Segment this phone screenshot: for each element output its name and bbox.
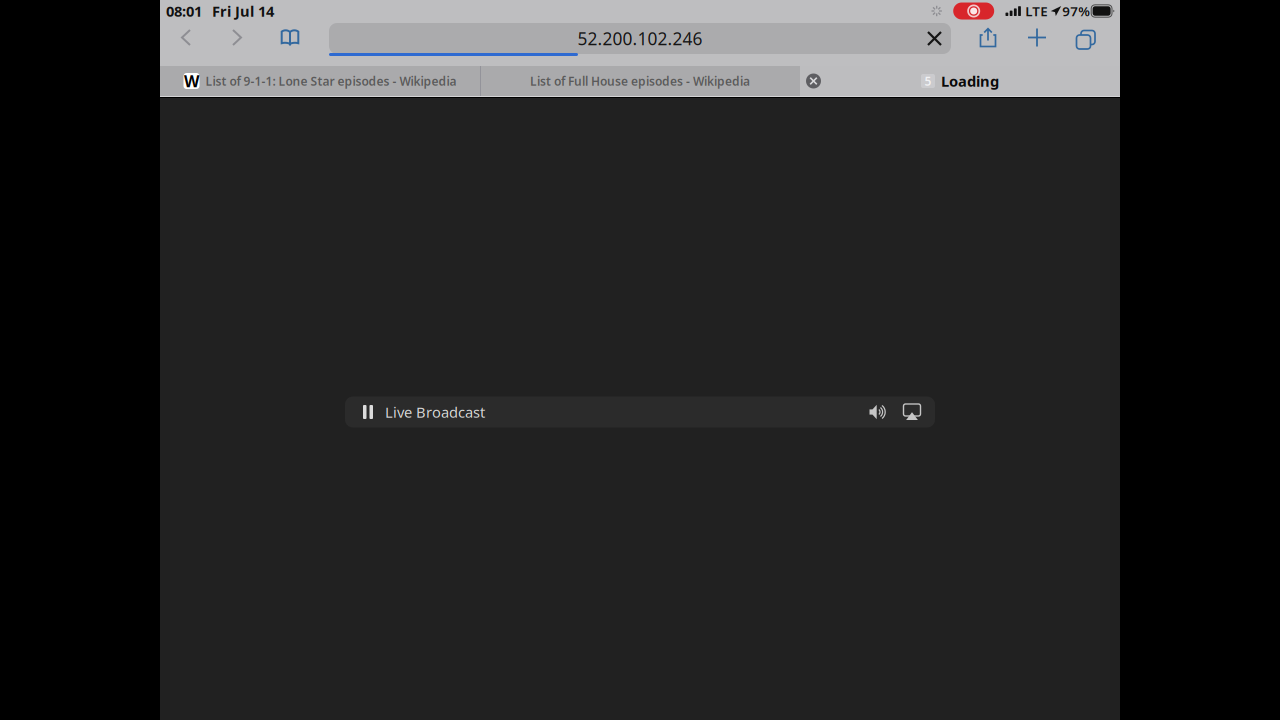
button[interactable]: Forward — [212, 22, 262, 53]
button[interactable]: AirPlay — [895, 397, 929, 427]
staticText: List of Full House episodes - Wikipedia — [530, 73, 750, 89]
staticText: Loading — [941, 71, 999, 91]
button[interactable]: Pause — [351, 397, 385, 427]
staticText: List of 9-1-1: Lone Star episodes - Wiki… — [205, 73, 456, 89]
staticText: 52.200.102.246 — [577, 27, 702, 50]
button[interactable]: Stop loading — [918, 23, 951, 54]
staticText: LTE — [1025, 2, 1047, 20]
staticText: Fri Jul 14 — [212, 1, 274, 21]
button[interactable]: Bookmarks — [262, 22, 318, 53]
button[interactable]: W — [160, 66, 480, 96]
staticText: Live Broadcast — [385, 402, 485, 422]
button[interactable]: Share — [964, 22, 1012, 53]
staticText: W — [184, 70, 199, 92]
button[interactable]: 5 — [800, 66, 1120, 96]
button[interactable]: List of Full House episodes - Wikipedia — [480, 66, 800, 96]
button[interactable]: Show all tabs — [1062, 22, 1114, 53]
staticText: 08:01 — [166, 1, 202, 21]
button[interactable]: Volume — [861, 397, 895, 427]
button[interactable]: New tab — [1012, 22, 1062, 53]
staticText: 5 — [924, 73, 931, 89]
button[interactable]: Back — [160, 22, 212, 53]
staticText: 97% — [1062, 2, 1090, 20]
